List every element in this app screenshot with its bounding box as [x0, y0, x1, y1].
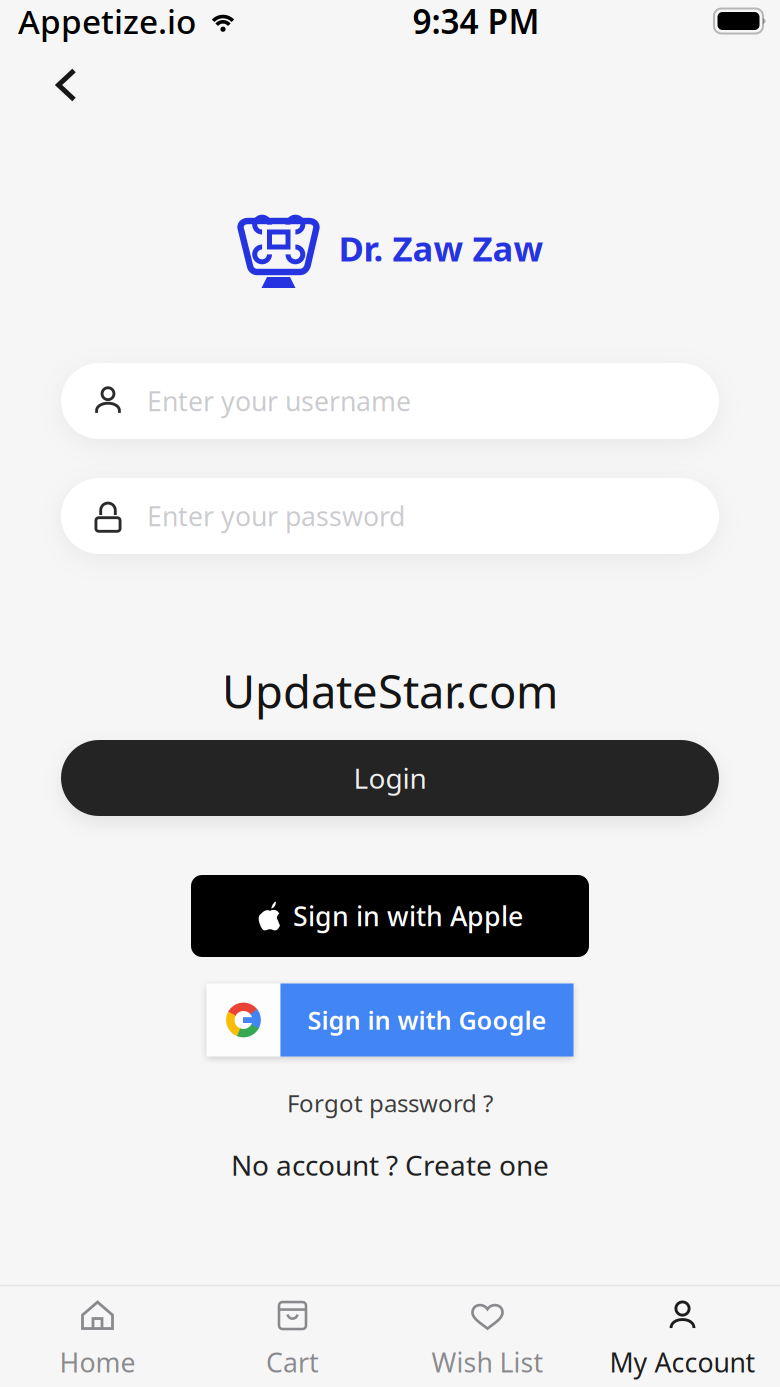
- button[interactable]: Enter your password: [61, 478, 719, 554]
- staticText: Enter your password: [147, 498, 405, 534]
- button[interactable]: No account ? Create one: [207, 1136, 573, 1194]
- staticText: Forgot password ?: [287, 1087, 493, 1119]
- button[interactable]: Login: [61, 740, 719, 816]
- staticText: Sign in with Google: [307, 1003, 546, 1037]
- staticText: Appetize.io: [18, 0, 196, 43]
- staticText: 9:34 PM: [412, 0, 539, 43]
- staticText: UpdateStar.com: [222, 661, 558, 721]
- button[interactable]: Sign in with Google: [206, 983, 573, 1056]
- button[interactable]: Cart: [195, 1286, 390, 1387]
- button[interactable]: Sign in with Apple: [191, 875, 589, 957]
- staticText: Dr. Zaw Zaw: [338, 225, 543, 271]
- button[interactable]: Enter your username: [61, 363, 719, 439]
- staticText: Login: [353, 759, 426, 797]
- button[interactable]: Back: [31, 53, 101, 117]
- staticText: My Account: [609, 1344, 755, 1380]
- staticText: Cart: [266, 1344, 319, 1380]
- staticText: Enter your username: [147, 383, 411, 419]
- staticText: Home: [59, 1344, 135, 1380]
- staticText: Sign in with Apple: [293, 898, 523, 934]
- button[interactable]: My Account: [585, 1286, 780, 1387]
- button[interactable]: Wish List: [390, 1286, 585, 1387]
- staticText: No account ? Create one: [231, 1146, 549, 1184]
- button[interactable]: Home: [0, 1286, 195, 1387]
- button[interactable]: Forgot password ?: [263, 1077, 517, 1129]
- staticText: Wish List: [431, 1344, 543, 1380]
